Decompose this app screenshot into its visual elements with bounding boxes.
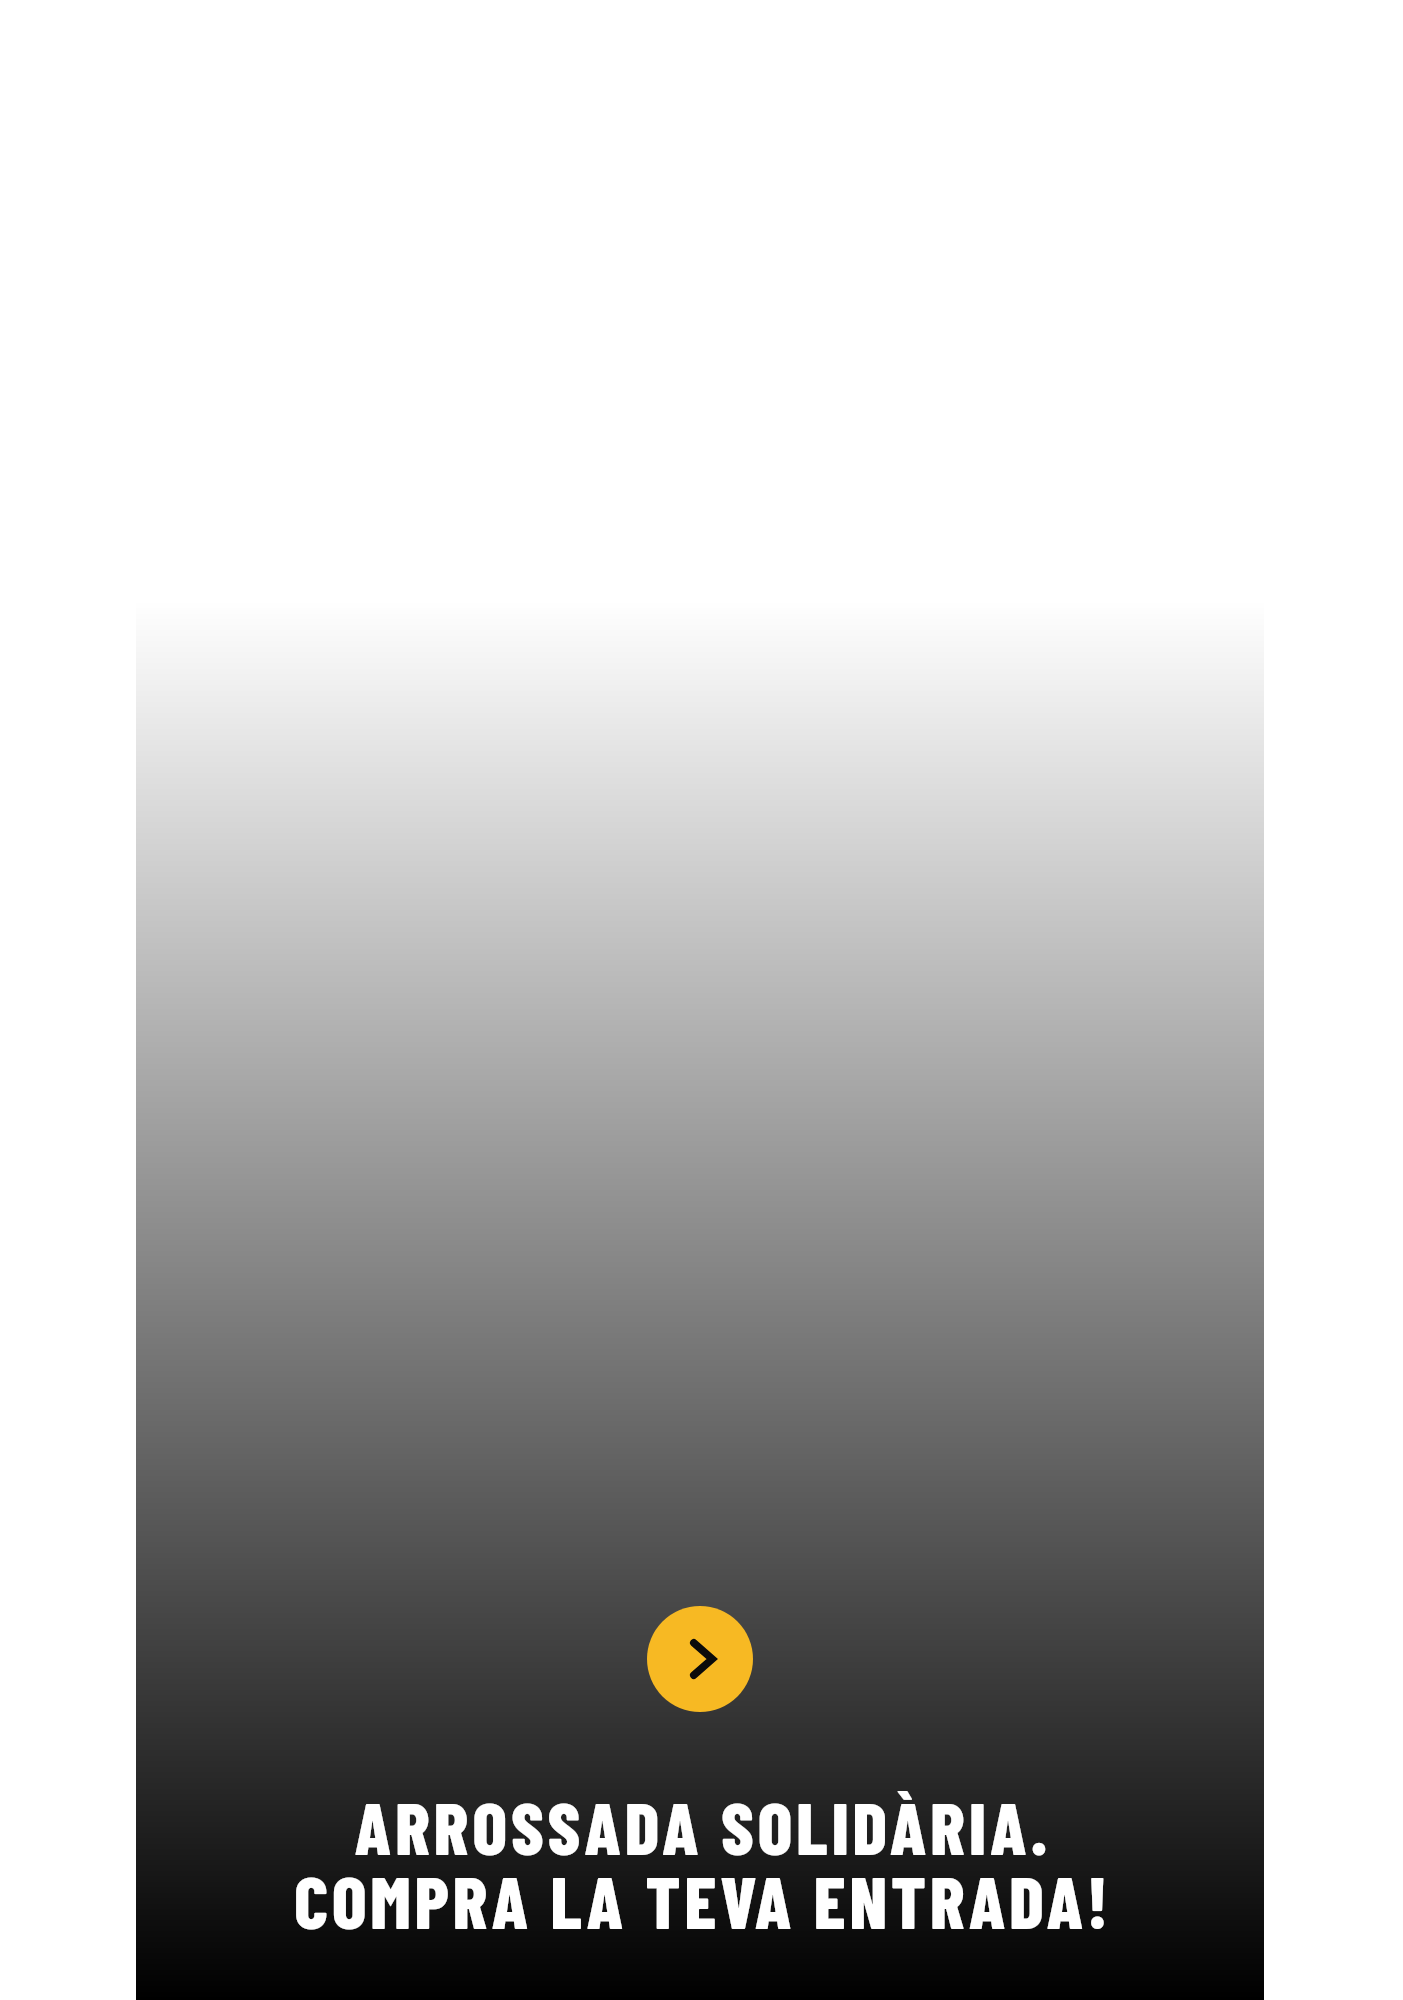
staticText: ARROSSADA SOLIDÀRIA. COMPRA LA TEVA ENTR… [139,1783,1267,1943]
button[interactable]: Next [647,1606,753,1712]
button[interactable]: Next [136,600,1264,2000]
